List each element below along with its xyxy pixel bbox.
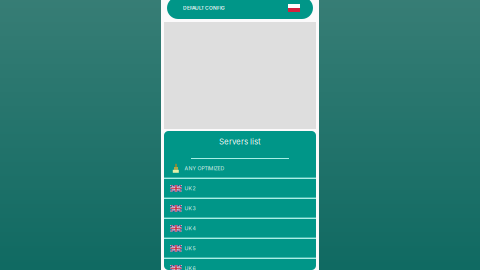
staticText: UK 5 — [184, 245, 195, 251]
staticText: UK 6 — [184, 265, 195, 270]
staticText: UK 4 — [184, 225, 195, 231]
staticText: DEFAULT CONFIG — [183, 5, 225, 11]
staticText: UK 3 — [184, 205, 195, 211]
staticText: Servers list — [219, 137, 261, 146]
staticText: ANY OPTIMIZED — [184, 165, 224, 171]
button[interactable]: UK 3 — [164, 199, 316, 219]
button[interactable]: DEFAULT CONFIG — [167, 0, 313, 19]
button[interactable]: UK 4 — [164, 219, 316, 239]
button[interactable]: UK 6 — [164, 259, 316, 270]
button[interactable]: ANY OPTIMIZED — [164, 159, 316, 179]
staticText: UK 2 — [184, 185, 195, 191]
button[interactable]: UK 5 — [164, 239, 316, 259]
button[interactable]: UK 2 — [164, 179, 316, 199]
